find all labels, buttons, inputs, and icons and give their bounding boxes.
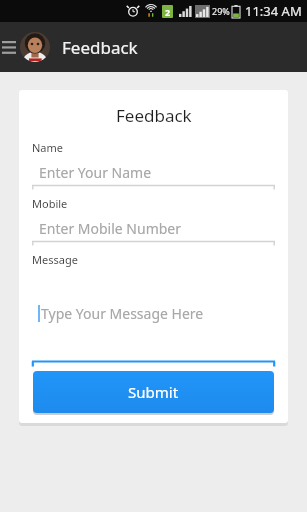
staticText: Submit: [128, 382, 179, 402]
staticText: Mobile: [32, 196, 68, 211]
staticText: Name: [32, 140, 64, 155]
staticText: Enter Mobile Number: [39, 219, 182, 238]
staticText: 11:34 AM: [245, 2, 302, 20]
button[interactable]: Submit: [33, 371, 274, 413]
staticText: Type Your Message Here: [41, 304, 204, 323]
button[interactable]: Open navigation drawer: [0, 22, 18, 72]
button[interactable]: Enter Your Name: [32, 160, 275, 189]
staticText: Enter Your Name: [39, 163, 152, 182]
button[interactable]: Enter Mobile Number: [32, 216, 275, 245]
staticText: Feedback: [116, 104, 192, 127]
staticText: Message: [32, 252, 78, 267]
staticText: 29%: [212, 5, 230, 17]
button[interactable]: Profile photo: [20, 32, 50, 62]
button[interactable]: Type Your Message Here: [32, 267, 275, 365]
staticText: 2: [165, 6, 171, 18]
staticText: Feedback: [62, 36, 138, 59]
